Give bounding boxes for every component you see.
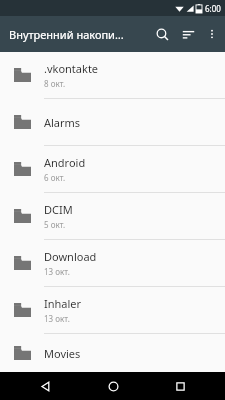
button[interactable]: Recent apps: [158, 372, 202, 400]
button[interactable]: Download: [0, 240, 225, 286]
staticText: Inhaler: [44, 296, 82, 311]
button[interactable]: Search: [149, 16, 175, 52]
staticText: .vkontakte: [44, 61, 99, 76]
button[interactable]: Movies: [0, 334, 225, 372]
staticText: Alarms: [44, 115, 81, 130]
button[interactable]: Back: [23, 372, 67, 400]
button[interactable]: Inhaler: [0, 287, 225, 333]
staticText: 6 окт.: [44, 172, 66, 183]
staticText: Movies: [44, 346, 81, 361]
staticText: Внутренний накопи…: [9, 27, 124, 42]
staticText: Download: [44, 249, 97, 264]
button[interactable]: Android: [0, 146, 225, 192]
button[interactable]: More options: [201, 16, 223, 52]
staticText: 13 окт.: [44, 313, 70, 324]
button[interactable]: Home: [91, 372, 135, 400]
staticText: 6:00: [205, 3, 221, 14]
staticText: DCIM: [44, 202, 73, 217]
button[interactable]: Alarms: [0, 99, 225, 145]
staticText: 8 окт.: [44, 78, 66, 89]
staticText: 13 окт.: [44, 266, 70, 277]
staticText: Android: [44, 155, 86, 170]
button[interactable]: DCIM: [0, 193, 225, 239]
staticText: 5 окт.: [44, 219, 66, 230]
button[interactable]: Sort: [175, 16, 201, 52]
button[interactable]: .vkontakte: [0, 52, 225, 98]
